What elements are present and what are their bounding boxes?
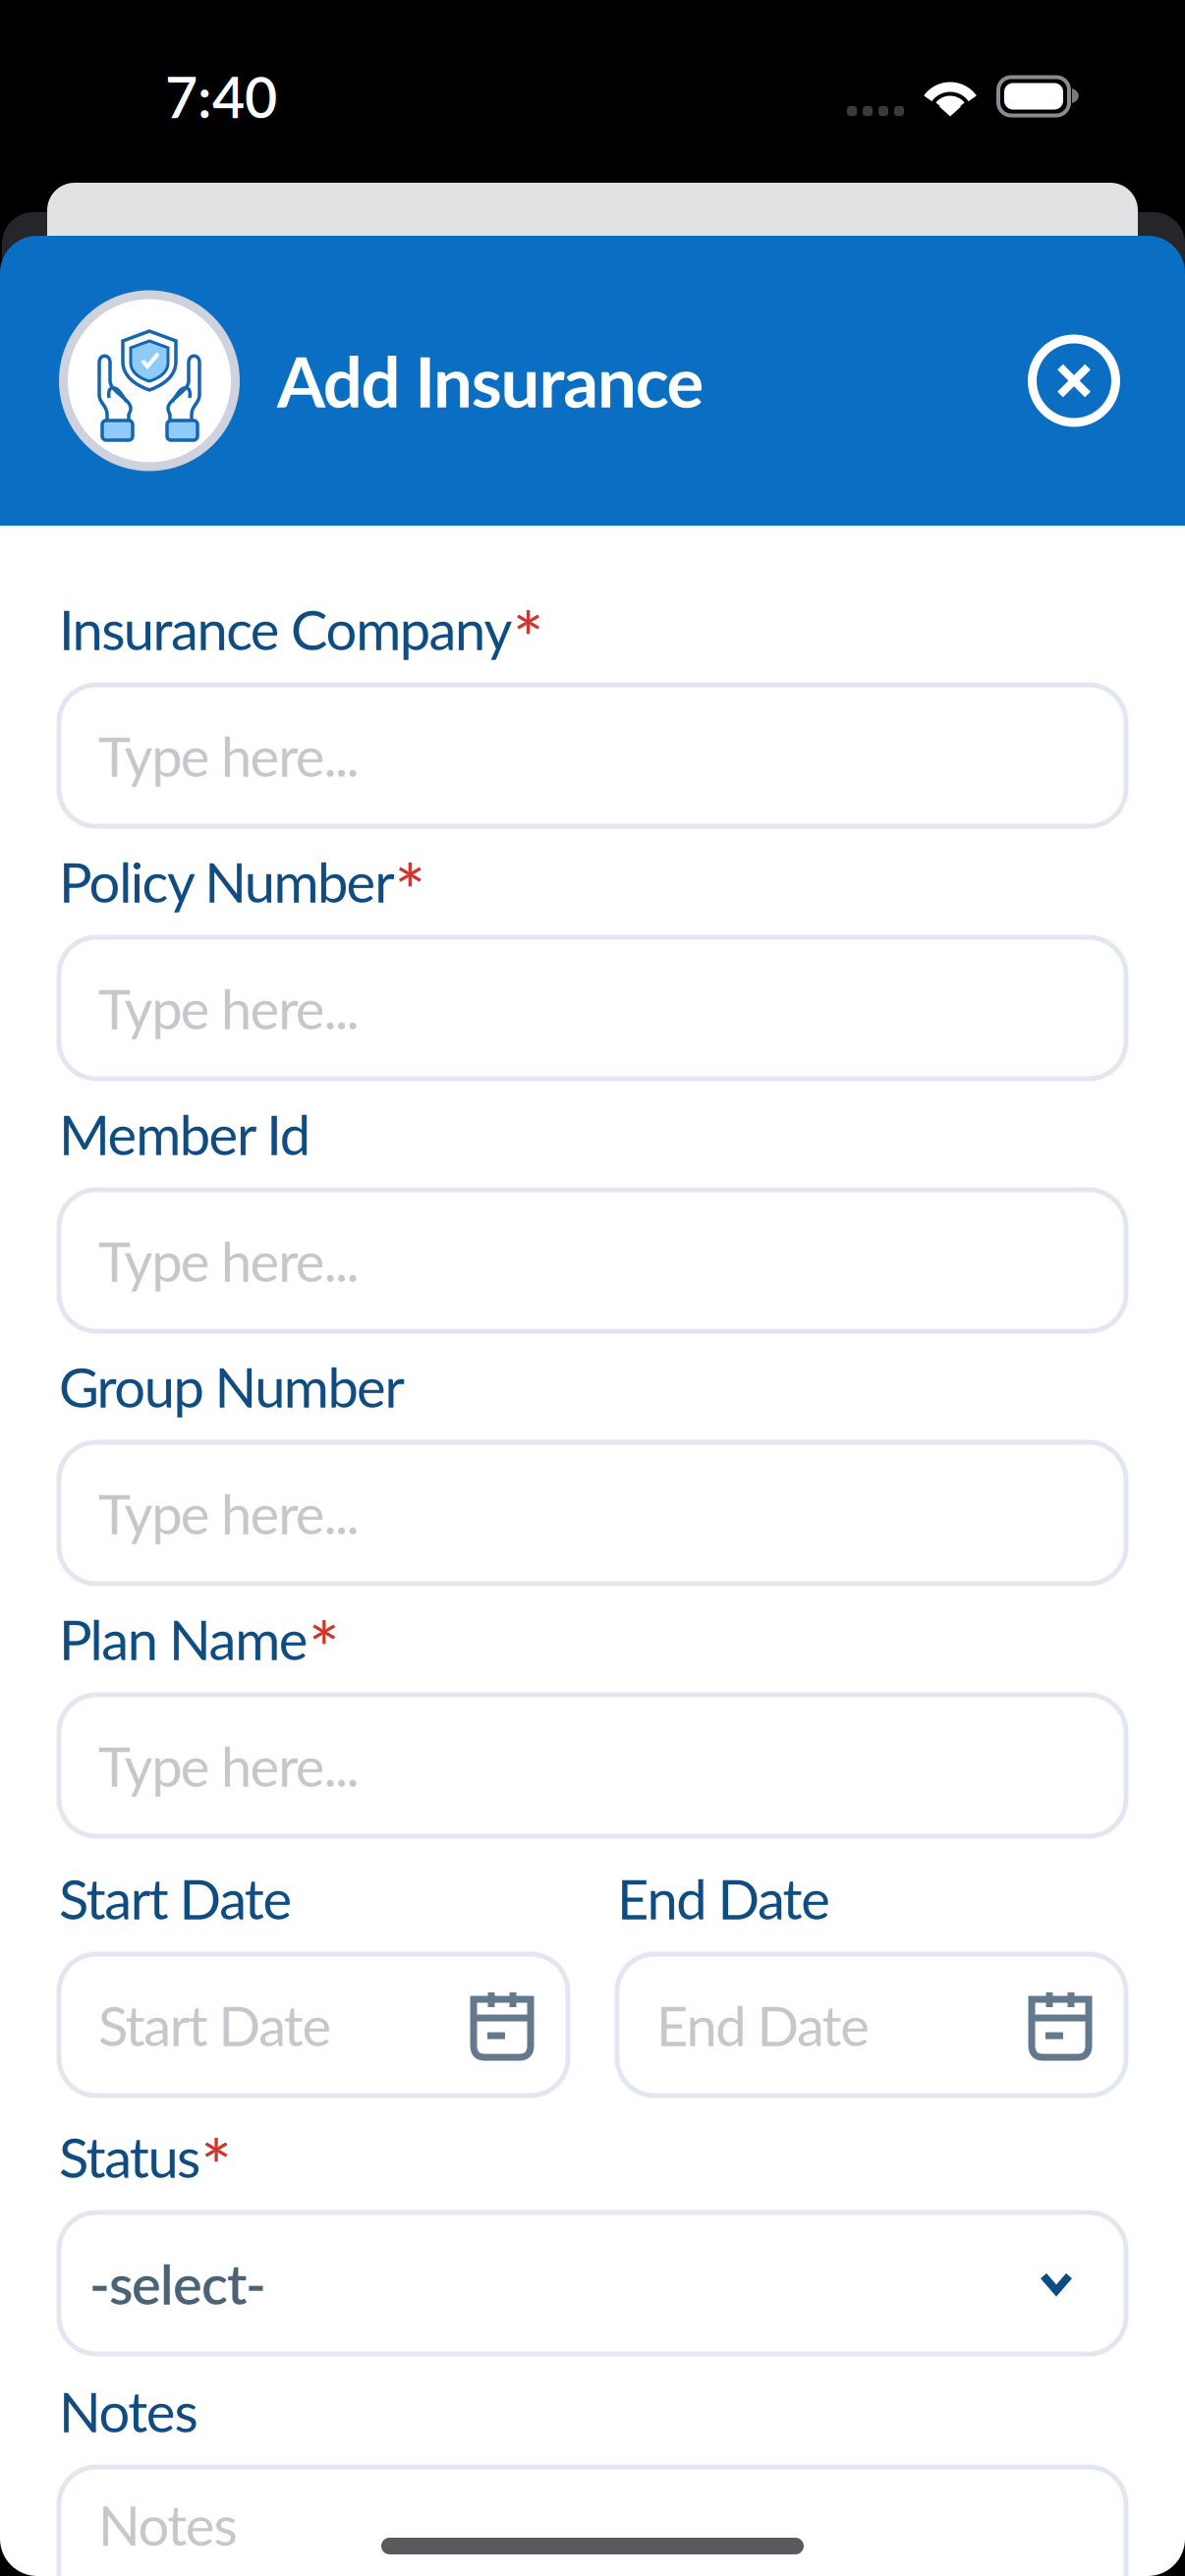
staticText: Add Insurance [277, 339, 704, 422]
staticText: Type here... [98, 975, 359, 1041]
staticText: Start Date [59, 1865, 292, 1931]
staticText: End Date [656, 1992, 870, 2058]
staticText: Type here... [98, 1732, 359, 1798]
staticText: -select- [89, 2250, 266, 2316]
button[interactable]: Type here... [59, 1190, 1126, 1331]
staticText: Insurance Company [59, 596, 513, 662]
button[interactable]: End Date [617, 1954, 1126, 2096]
staticText: * [513, 593, 544, 682]
staticText: Notes [98, 2492, 237, 2558]
staticText: Policy Number [59, 848, 394, 914]
staticText: End Date [617, 1865, 830, 1931]
staticText: * [394, 846, 426, 935]
staticText: Member Id [59, 1101, 310, 1167]
button[interactable]: Type here... [59, 937, 1126, 1079]
button[interactable]: -select- [59, 2212, 1126, 2354]
staticText: Plan Name [59, 1606, 308, 1672]
button[interactable]: Type here... [59, 685, 1126, 826]
button[interactable]: Notes [59, 2467, 1126, 2576]
staticText: 7:40 [165, 62, 277, 130]
staticText: Notes [59, 2378, 198, 2444]
button[interactable]: Type here... [59, 1442, 1126, 1584]
staticText: Status [59, 2123, 200, 2190]
staticText: Type here... [98, 1480, 359, 1546]
staticText: Type here... [98, 1227, 359, 1294]
button[interactable]: Type here... [59, 1695, 1126, 1836]
button[interactable]: Start Date [59, 1954, 568, 2096]
staticText: Group Number [59, 1353, 404, 1419]
staticText: Type here... [98, 722, 359, 789]
staticText: * [200, 2121, 232, 2210]
staticText: Start Date [98, 1992, 332, 2058]
button[interactable]: Close [1015, 322, 1133, 440]
staticText: * [308, 1603, 340, 1692]
